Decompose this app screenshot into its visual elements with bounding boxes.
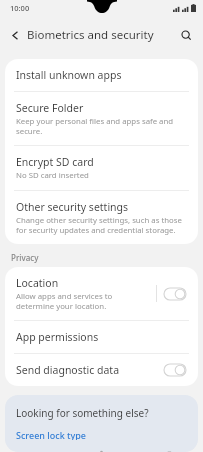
staticText: App permissions: [16, 330, 99, 344]
staticText: Looking for something else?: [16, 406, 149, 420]
staticText: Screen lock type: [16, 429, 86, 440]
button[interactable]: Encrypt SD card: [5, 146, 198, 190]
staticText: Allow apps and services to determine you…: [16, 291, 148, 311]
staticText: Other security settings: [16, 200, 129, 214]
staticText: Location: [16, 276, 59, 290]
staticText: Change other security settings, such as …: [16, 215, 186, 235]
button[interactable]: Toggle: [164, 364, 190, 376]
button[interactable]: Location: [5, 267, 198, 320]
button[interactable]: Send diagnostic data: [5, 354, 198, 386]
button[interactable]: Other security settings: [5, 191, 198, 244]
staticText: Secure Folder: [16, 101, 84, 115]
staticText: Keep your personal files and apps safe a…: [16, 116, 186, 136]
staticText: Privacy: [11, 252, 39, 263]
staticText: 10:00: [10, 3, 30, 13]
staticText: Install unknown apps: [16, 68, 122, 82]
button[interactable]: Install unknown apps: [5, 59, 198, 91]
staticText: No SD card inserted: [16, 170, 89, 181]
button[interactable]: App permissions: [5, 321, 198, 353]
staticText: Encrypt SD card: [16, 155, 94, 169]
button[interactable]: Secure Folder: [5, 92, 198, 145]
button[interactable]: Screen lock type: [16, 429, 86, 440]
staticText: Send diagnostic data: [16, 363, 120, 377]
button[interactable]: Search: [175, 24, 197, 46]
button[interactable]: Toggle: [156, 285, 190, 302]
staticText: Biometrics and security: [27, 27, 154, 43]
button[interactable]: Back: [4, 24, 26, 46]
